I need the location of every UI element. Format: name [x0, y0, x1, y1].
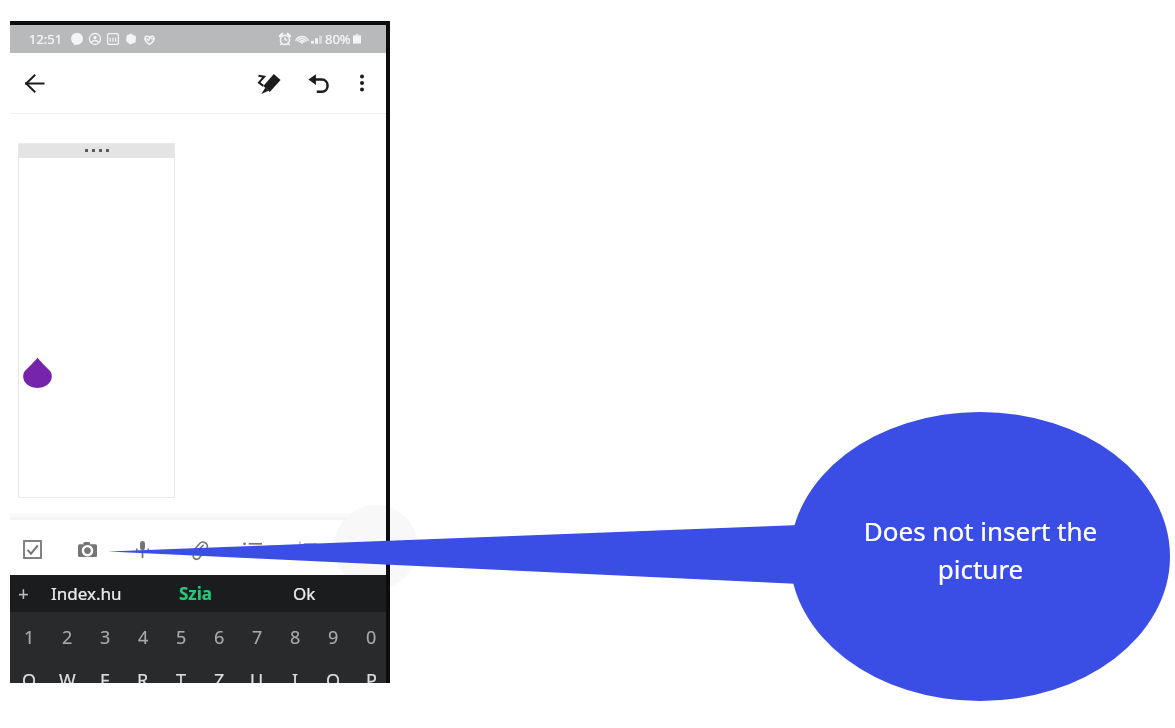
button[interactable]: Drawing note: [18, 143, 175, 498]
staticText: P: [366, 668, 377, 683]
staticText: Q: [22, 668, 37, 683]
staticText: 3: [100, 625, 111, 650]
staticText: 12:51: [29, 30, 63, 48]
button[interactable]: Attach: [177, 529, 217, 569]
staticText: Ok: [293, 582, 316, 605]
button[interactable]: 6: [200, 612, 238, 662]
staticText: I: [292, 668, 299, 683]
button[interactable]: Draw: [247, 60, 293, 106]
staticText: 6: [214, 625, 225, 650]
staticText: Szia: [179, 582, 213, 605]
button[interactable]: Index.hu: [26, 575, 146, 612]
button[interactable]: 2: [48, 612, 86, 662]
button[interactable]: O: [314, 668, 352, 683]
button[interactable]: Voice: [122, 529, 162, 569]
staticText: Z: [214, 668, 225, 683]
button[interactable]: 5: [162, 612, 200, 662]
staticText: 4: [138, 625, 149, 650]
staticText: 1: [24, 625, 35, 650]
button[interactable]: W: [48, 668, 86, 683]
button[interactable]: Undo: [293, 60, 339, 106]
button[interactable]: Numbered list: [287, 529, 327, 569]
staticText: 2: [62, 625, 73, 650]
button[interactable]: Bulleted list: [232, 529, 272, 569]
staticText: 7: [252, 625, 263, 650]
button[interactable]: Z: [200, 668, 238, 683]
staticText: 80%: [325, 30, 351, 48]
staticText: 9: [328, 625, 339, 650]
staticText: U: [250, 668, 264, 683]
button[interactable]: 9: [314, 612, 352, 662]
staticText: Index.hu: [51, 582, 122, 605]
button[interactable]: 8: [276, 612, 314, 662]
button[interactable]: Checklist: [12, 529, 52, 569]
staticText: T: [176, 668, 187, 683]
staticText: 8: [290, 625, 301, 650]
button[interactable]: 0: [352, 612, 390, 662]
button[interactable]: Ok: [244, 575, 364, 612]
button[interactable]: R: [124, 668, 162, 683]
button[interactable]: Q: [10, 668, 48, 683]
button[interactable]: U: [238, 668, 276, 683]
staticText: E: [100, 668, 111, 683]
button[interactable]: 7: [238, 612, 276, 662]
button[interactable]: Add: [10, 575, 36, 612]
staticText: +: [18, 581, 29, 607]
staticText: W: [59, 668, 76, 683]
staticText: Does not insert the picture: [838, 513, 1123, 586]
staticText: R: [137, 668, 149, 683]
button[interactable]: 1: [10, 612, 48, 662]
staticText: 0: [366, 625, 377, 650]
button[interactable]: T: [162, 668, 200, 683]
button[interactable]: 4: [124, 612, 162, 662]
staticText: O: [326, 668, 341, 683]
button[interactable]: 3: [86, 612, 124, 662]
button[interactable]: I: [276, 668, 314, 683]
button[interactable]: Back: [11, 60, 57, 106]
button[interactable]: P: [352, 668, 390, 683]
button[interactable]: E: [86, 668, 124, 683]
staticText: 5: [176, 625, 187, 650]
button[interactable]: Camera: [67, 529, 107, 569]
button[interactable]: More options: [339, 60, 385, 106]
button[interactable]: Szia: [136, 575, 256, 612]
